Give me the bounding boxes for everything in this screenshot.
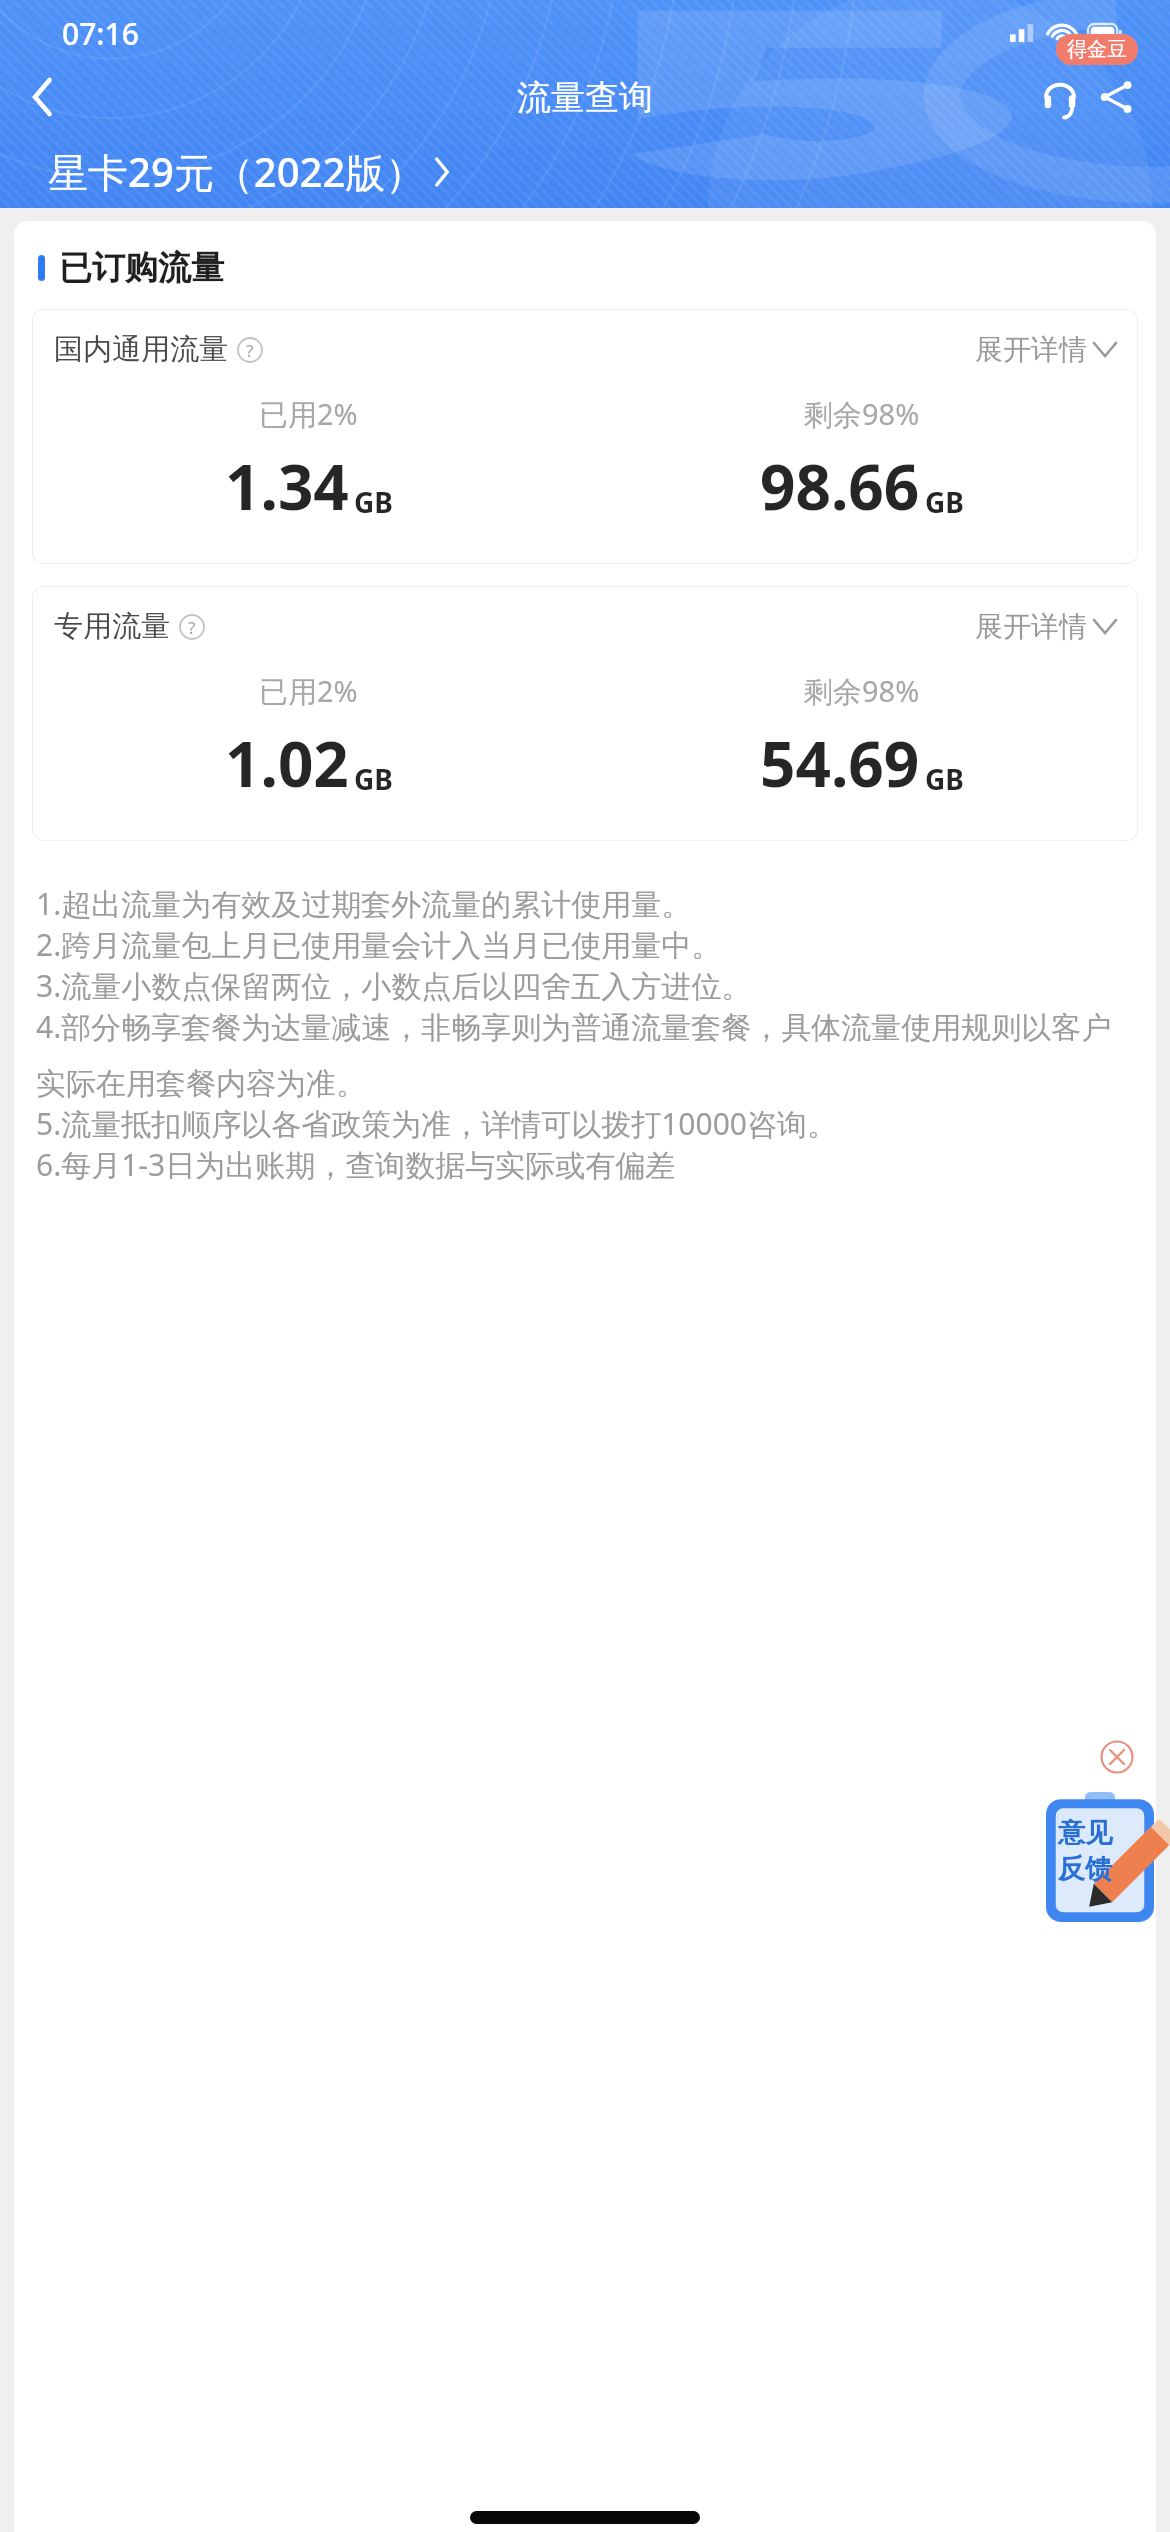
staticText: 剩余98% [804,394,920,434]
staticText: ? [246,339,254,362]
staticText: 2.跨月流量包上月已使用量会计入当月已使用量中。 [36,924,722,965]
staticText: 国内通用流量 [54,331,228,368]
staticText: 展开详情 [975,609,1087,644]
staticText: 1.超出流量为有效及过期套外流量的累计使用量。 [36,883,692,924]
staticText: GB [925,760,964,798]
staticText: 4.部分畅享套餐为达量减速，非畅享则为普通流量套餐，具体流量使用规则以客户实际在… [36,1006,1134,1103]
staticText: 专用流量 [54,608,170,645]
staticText: 得金豆 [1067,37,1127,62]
button[interactable]: 分享 [1088,69,1144,125]
staticText: 意见 [1058,1816,1112,1850]
other: 说明 [237,337,263,363]
staticText: 流量查询 [517,76,653,119]
staticText: 已订购流量 [59,247,224,289]
button[interactable]: 返回 [16,70,70,124]
staticText: 反馈 [1058,1852,1112,1886]
button[interactable]: 星卡29元（2022版） [48,144,449,199]
staticText: 98.66 [760,444,920,528]
staticText: 07:16 [62,13,139,54]
staticText: 3.流量小数点保留两位，小数点后以四舍五入方进位。 [36,965,752,1006]
button[interactable]: 专用流量 [32,586,1138,841]
staticText: 1.02 [225,721,349,805]
button[interactable]: 国内通用流量 [32,309,1138,564]
button[interactable]: 得金豆 [1056,34,1138,65]
staticText: 已用2% [259,671,358,711]
button[interactable]: 关闭 [1100,1740,1134,1774]
staticText: 展开详情 [975,332,1087,367]
button[interactable]: 展开详情 [975,332,1116,367]
staticText: 星卡29元（2022版） [48,144,426,199]
staticText: 6.每月1-3日为出账期，查询数据与实际或有偏差 [36,1144,676,1185]
staticText: 1.34 [225,444,349,528]
staticText: GB [354,483,393,521]
button[interactable]: 意见反馈 [1046,1792,1154,1922]
staticText: 已用2% [259,394,358,434]
staticText: 剩余98% [804,671,920,711]
staticText: ? [188,616,196,639]
staticText: GB [925,483,964,521]
staticText: 54.69 [760,721,920,805]
button[interactable]: 展开详情 [975,609,1116,644]
other: 说明 [179,614,205,640]
staticText: 5.流量抵扣顺序以各省政策为准，详情可以拨打10000咨询。 [36,1103,837,1144]
button[interactable]: 在线客服 [1032,69,1088,125]
staticText: GB [354,760,393,798]
